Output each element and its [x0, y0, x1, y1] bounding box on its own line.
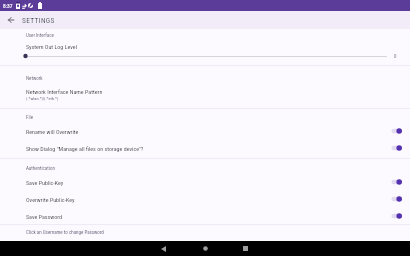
button[interactable]: Rename will Overwrite — [0, 124, 410, 138]
staticText: Show Dialog "Manage all files on storage… — [26, 145, 390, 152]
button[interactable]: Navigate up — [0, 11, 22, 29]
staticText: System Out Log Level — [26, 43, 78, 50]
staticText: Network Interface Name Pattern — [26, 88, 103, 95]
staticText: Click an Username to change Password — [26, 229, 104, 235]
button[interactable]: Save Password — [0, 209, 410, 223]
button[interactable]: Show Dialog "Manage all files on storage… — [0, 141, 410, 155]
staticText: Save Password — [26, 213, 390, 220]
staticText: (.*wlan.*)|(.*eth.*) — [26, 96, 59, 101]
staticText: Authentication — [26, 165, 55, 171]
staticText: Save Public-Key — [26, 179, 390, 186]
button[interactable]: Network Interface Name Pattern — [0, 85, 410, 97]
button[interactable]: System Out Log Level — [0, 40, 410, 52]
button[interactable]: Overwrite Public-Key — [0, 192, 410, 206]
staticText: File — [26, 114, 34, 120]
staticText: Overwrite Public-Key — [26, 196, 390, 203]
staticText: Rename will Overwrite — [26, 128, 390, 135]
button[interactable]: Home — [190, 241, 220, 256]
staticText: 8:37 — [3, 3, 13, 9]
staticText: Network — [26, 75, 43, 81]
button[interactable]: Recent apps — [230, 241, 260, 256]
staticText: SETTINGS — [22, 16, 55, 25]
staticText: 0 — [394, 53, 397, 59]
button[interactable]: Save Public-Key — [0, 175, 410, 189]
staticText: User Interface — [26, 32, 54, 38]
button[interactable]: Click an Username to change Password — [0, 226, 410, 238]
button[interactable]: Back — [148, 241, 178, 256]
